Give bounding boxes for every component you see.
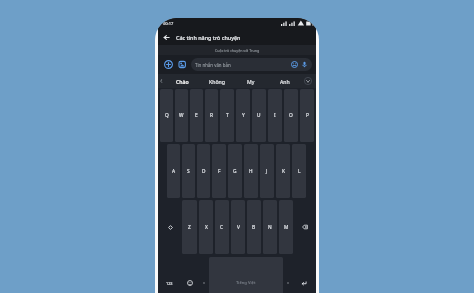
staticText: G — [233, 168, 237, 175]
button[interactable]: Backspace — [295, 200, 314, 254]
button[interactable]: L — [292, 144, 306, 198]
staticText: B — [252, 224, 256, 231]
staticText: C — [220, 224, 224, 231]
button[interactable]: C — [215, 200, 229, 254]
button[interactable]: R — [205, 89, 218, 142]
staticText: T — [226, 112, 229, 119]
button[interactable]: Anh — [268, 74, 302, 88]
button[interactable]: T — [220, 89, 234, 142]
button[interactable]: S — [182, 144, 195, 198]
staticText: Không — [209, 78, 225, 85]
button[interactable]: W — [175, 89, 188, 142]
staticText: D — [202, 168, 206, 175]
button[interactable]: P — [300, 89, 314, 142]
button[interactable]: X — [199, 200, 213, 254]
button[interactable]: Shift — [160, 200, 180, 254]
button[interactable]: My — [234, 74, 268, 88]
button[interactable]: Back — [158, 29, 174, 45]
staticText: Q — [165, 112, 169, 119]
staticText: My — [247, 78, 255, 85]
button[interactable]: Period — [284, 255, 292, 293]
staticText: V — [237, 224, 240, 231]
staticText: L — [298, 168, 301, 175]
button[interactable]: Gallery — [176, 58, 189, 71]
staticText: E — [195, 112, 198, 119]
staticText: Cuộc trò chuyện với Trung — [215, 48, 260, 53]
button[interactable]: Q — [160, 89, 173, 142]
staticText: R — [210, 112, 213, 119]
other: Voice input — [301, 61, 308, 68]
button[interactable]: O — [284, 89, 298, 142]
staticText: W — [179, 112, 184, 119]
staticText: X — [205, 224, 208, 231]
button[interactable]: B — [247, 200, 261, 254]
button[interactable]: D — [197, 144, 210, 198]
button[interactable]: Emoji keyboard — [180, 255, 200, 293]
staticText: S — [187, 168, 190, 175]
button[interactable]: A — [167, 144, 180, 198]
staticText: 123 — [166, 281, 173, 286]
button[interactable]: Chào — [165, 74, 200, 88]
button[interactable]: Tiếng Việt — [209, 257, 283, 293]
staticText: A — [172, 168, 176, 175]
button[interactable]: M — [279, 200, 293, 254]
button[interactable]: Add attachment — [162, 58, 175, 71]
button[interactable]: E — [190, 89, 203, 142]
staticText: P — [306, 112, 309, 119]
staticText: Tiếng Việt — [236, 280, 256, 286]
button[interactable]: I — [268, 89, 282, 142]
staticText: Tin nhắn văn bản — [195, 62, 231, 68]
button[interactable]: Comma — [200, 255, 208, 293]
staticText: Anh — [280, 78, 290, 85]
staticText: H — [249, 168, 253, 175]
other: Emoji — [291, 61, 298, 68]
button[interactable]: Không — [200, 74, 234, 88]
button[interactable]: Expand suggestions — [302, 75, 314, 87]
staticText: U — [257, 112, 261, 119]
staticText: Chào — [176, 78, 189, 85]
staticText: F — [218, 168, 221, 175]
button[interactable]: F — [212, 144, 226, 198]
button[interactable]: K — [276, 144, 290, 198]
staticText: K — [282, 168, 285, 175]
button[interactable]: Z — [182, 200, 197, 254]
staticText: 00:17 — [163, 21, 174, 26]
staticText: M — [284, 224, 289, 231]
button[interactable]: U — [252, 89, 266, 142]
button[interactable]: Y — [236, 89, 250, 142]
button[interactable]: Tin nhắn văn bản — [191, 58, 312, 71]
staticText: O — [289, 112, 293, 119]
staticText: Z — [188, 224, 191, 231]
button[interactable]: Enter — [292, 255, 315, 293]
button[interactable]: 123 — [159, 255, 180, 293]
staticText: Y — [242, 112, 245, 119]
button[interactable]: H — [244, 144, 258, 198]
button[interactable]: G — [228, 144, 242, 198]
button[interactable]: J — [260, 144, 274, 198]
staticText: J — [266, 168, 268, 175]
staticText: N — [268, 224, 272, 231]
staticText: Các tính năng trò chuyện — [176, 34, 241, 41]
button[interactable]: V — [231, 200, 245, 254]
staticText: I — [274, 112, 276, 119]
button[interactable]: N — [263, 200, 277, 254]
